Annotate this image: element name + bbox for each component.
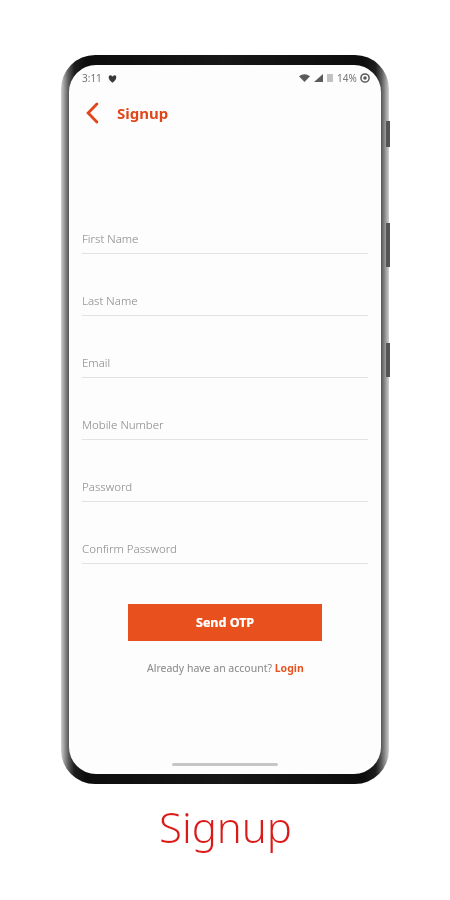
staticText: Password	[82, 479, 133, 495]
button[interactable]: Mobile Number	[82, 397, 368, 459]
button[interactable]: Email	[82, 335, 368, 397]
staticText: Confirm Password	[82, 541, 177, 557]
button[interactable]: Last Name	[82, 273, 368, 335]
staticText: Last Name	[82, 293, 138, 309]
staticText: Mobile Number	[82, 417, 164, 433]
staticText: First Name	[82, 231, 139, 247]
staticText: 3:11	[82, 71, 102, 85]
button[interactable]: First Name	[82, 211, 368, 273]
button[interactable]: Already have an account? Login	[143, 657, 308, 679]
button[interactable]: Password	[82, 459, 368, 521]
staticText: Email	[82, 355, 111, 371]
button[interactable]: Send OTP	[128, 604, 322, 641]
staticText: Already have an account? Login	[147, 661, 304, 675]
staticText: 14%	[337, 71, 357, 85]
staticText: Send OTP	[196, 614, 255, 631]
button[interactable]: Back	[76, 97, 108, 129]
staticText: Signup	[159, 798, 292, 855]
staticText: Signup	[117, 103, 169, 123]
button[interactable]: Confirm Password	[82, 521, 368, 583]
